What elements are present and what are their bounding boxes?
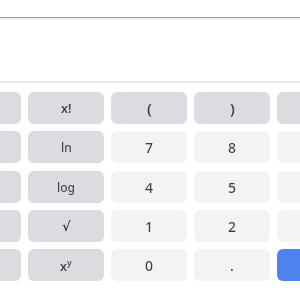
button[interactable]: tan	[0, 210, 21, 242]
button[interactable]: √	[28, 210, 104, 242]
button[interactable]: sin	[0, 131, 21, 163]
staticText: x!	[61, 100, 72, 117]
button[interactable]: INV	[0, 92, 21, 124]
staticText: (	[147, 98, 152, 118]
button[interactable]: =	[277, 249, 300, 281]
button[interactable]: log	[28, 171, 104, 203]
button[interactable]: 8	[194, 131, 270, 163]
staticText: log	[57, 179, 76, 195]
button[interactable]: )	[194, 92, 270, 124]
staticText: 5	[228, 178, 237, 197]
staticText: .	[230, 256, 234, 275]
button[interactable]: 5	[194, 171, 270, 203]
staticText: 0	[145, 256, 154, 275]
staticText: 7	[145, 138, 154, 157]
staticText: 2	[228, 217, 237, 236]
staticText: 8	[228, 138, 237, 157]
button[interactable]: 2	[194, 210, 270, 242]
staticText: ln	[61, 139, 72, 155]
button[interactable]: ln	[28, 131, 104, 163]
staticText: )	[230, 98, 235, 118]
button[interactable]: 0	[111, 249, 187, 281]
button[interactable]: cos	[0, 171, 21, 203]
button[interactable]: %	[277, 92, 300, 124]
staticText: 1	[145, 217, 154, 236]
staticText: 4	[145, 178, 154, 197]
staticText: xy	[60, 257, 72, 274]
button[interactable]: x!	[28, 92, 104, 124]
button[interactable]: 1	[111, 210, 187, 242]
button[interactable]: 7	[111, 131, 187, 163]
button[interactable]: (	[111, 92, 187, 124]
button[interactable]: .	[194, 249, 270, 281]
button[interactable]: 4	[111, 171, 187, 203]
button[interactable]: xy	[28, 249, 104, 281]
button[interactable]: e	[0, 249, 21, 281]
staticText: √	[62, 219, 71, 234]
